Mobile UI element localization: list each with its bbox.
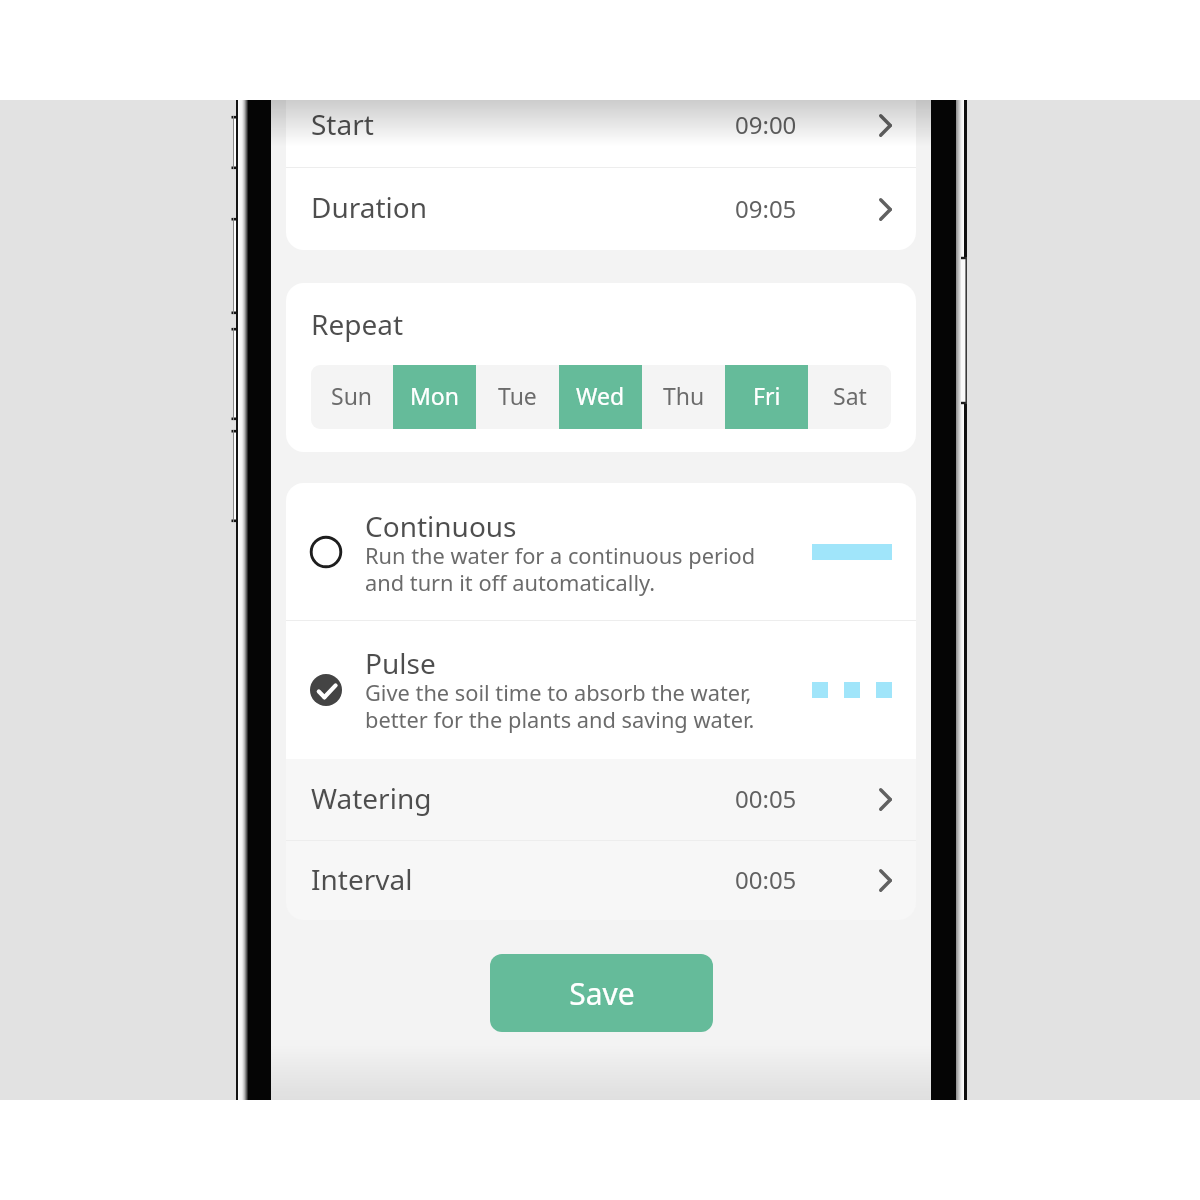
other: Open [879,198,892,221]
button[interactable]: Duration [286,168,916,250]
staticText: Save [569,973,635,1014]
staticText: Interval [311,860,413,898]
other: Open [879,788,892,811]
staticText: Sat [833,380,867,411]
staticText: 09:00 [735,108,797,141]
staticText: Pulse [365,644,436,682]
button[interactable]: Save [490,954,713,1032]
staticText: Watering [311,779,432,817]
button[interactable]: Sat [808,365,891,429]
button[interactable]: Mon [393,365,476,429]
staticText: Run the water for a continuous period an… [365,541,756,598]
button[interactable]: Interval [286,841,916,920]
staticText: Sun [331,380,373,411]
button[interactable]: Watering [286,759,916,840]
staticText: 00:05 [735,863,797,896]
staticText: Wed [576,380,625,411]
button[interactable]: Sun [311,365,393,429]
staticText: Fri [753,380,781,411]
button[interactable]: Pulse [286,621,916,759]
staticText: Thu [663,380,705,411]
staticText: Give the soil time to absorb the water, … [365,678,755,735]
staticText: Start [311,105,374,143]
button[interactable]: Fri [725,365,808,429]
staticText: Duration [311,188,428,226]
other: Open [879,114,892,137]
staticText: Tue [498,380,537,411]
staticText: 00:05 [735,782,797,815]
button[interactable]: Thu [642,365,725,429]
staticText: Continuous [365,507,517,545]
button[interactable]: Wed [559,365,642,429]
button[interactable]: Continuous [286,483,916,620]
staticText: Mon [410,380,459,411]
button[interactable]: Start [286,84,916,167]
staticText: 09:05 [735,192,797,225]
button[interactable]: Tue [476,365,559,429]
other: Open [879,869,892,892]
staticText: Repeat [311,305,404,343]
